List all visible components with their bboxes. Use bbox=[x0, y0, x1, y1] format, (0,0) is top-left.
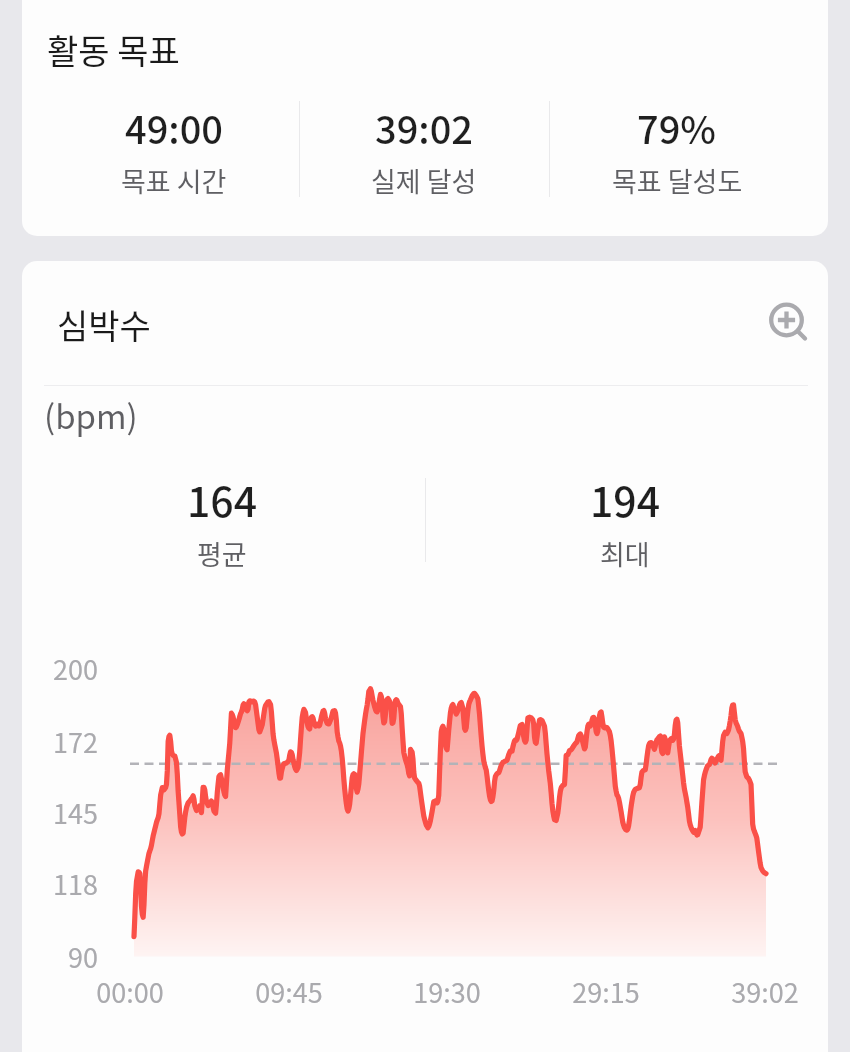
staticText: 164 bbox=[187, 469, 258, 528]
button[interactable]: Zoom in bbox=[756, 295, 812, 351]
staticText: 최대 bbox=[600, 534, 650, 573]
staticText: 목표 달성도 bbox=[612, 161, 743, 200]
button[interactable]: 활동 목표 bbox=[22, 0, 828, 236]
button[interactable]: 164 bbox=[72, 469, 372, 573]
staticText: 활동 목표 bbox=[47, 25, 180, 74]
staticText: (bpm) bbox=[44, 391, 138, 439]
staticText: 49:00 bbox=[125, 100, 223, 155]
staticText: 39:02 bbox=[375, 100, 473, 155]
button[interactable]: 39:02 bbox=[274, 100, 574, 200]
staticText: 90 bbox=[68, 937, 98, 976]
button[interactable]: 심박수 bbox=[22, 261, 828, 1052]
staticText: 평균 bbox=[197, 534, 247, 573]
staticText: 목표 시간 bbox=[121, 161, 227, 200]
button[interactable]: 79% bbox=[527, 100, 827, 200]
staticText: 145 bbox=[53, 793, 98, 832]
button[interactable]: 49:00 bbox=[24, 100, 324, 200]
staticText: 172 bbox=[53, 722, 98, 761]
staticText: 200 bbox=[53, 649, 98, 688]
button[interactable]: 194 bbox=[475, 469, 775, 573]
staticText: 79% bbox=[637, 100, 717, 155]
staticText: 심박수 bbox=[57, 300, 151, 349]
staticText: 29:15 bbox=[572, 972, 640, 1011]
staticText: 39:02 bbox=[731, 972, 799, 1011]
staticText: 00:00 bbox=[96, 972, 164, 1011]
staticText: 118 bbox=[53, 864, 98, 903]
staticText: 09:45 bbox=[255, 972, 323, 1011]
staticText: 19:30 bbox=[413, 972, 481, 1011]
staticText: 194 bbox=[590, 469, 661, 528]
staticText: 실제 달성 bbox=[371, 161, 477, 200]
